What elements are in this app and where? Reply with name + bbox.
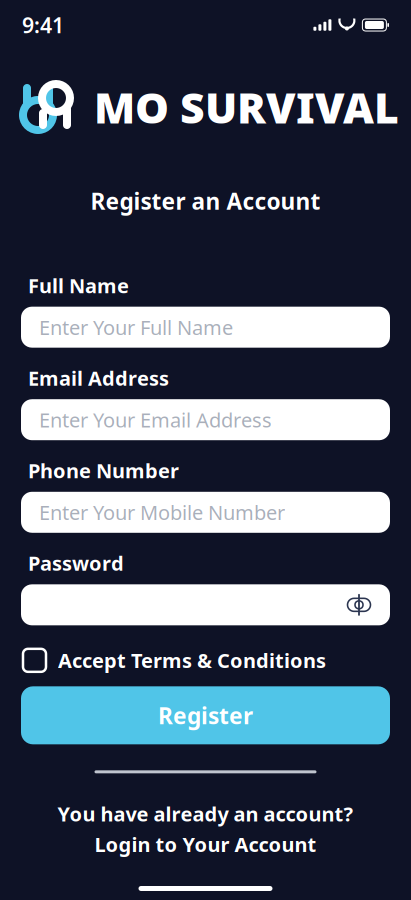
staticText: Accept Terms & Conditions — [58, 647, 326, 674]
staticText: Enter Your Mobile Number — [39, 499, 285, 526]
staticText: Register an Account — [90, 186, 320, 216]
staticText: Enter Your Full Name — [39, 314, 233, 340]
staticText: Email Address — [28, 365, 169, 391]
staticText: Enter Your Email Address — [39, 406, 272, 433]
staticText: 9:41 — [22, 11, 64, 39]
button[interactable]: Accept Terms & Conditions — [0, 643, 411, 677]
staticText: MO SURVIVAL — [94, 79, 399, 135]
button[interactable]: You have already an account? — [0, 800, 411, 857]
button[interactable]: Register — [21, 686, 390, 744]
staticText: Phone Number — [28, 457, 179, 484]
staticText: Login to Your Account — [94, 831, 316, 857]
staticText: You have already an account? — [57, 800, 353, 827]
button[interactable]: Enter Your Email Address — [21, 399, 390, 440]
staticText: Register — [158, 700, 253, 730]
staticText: Password — [28, 550, 124, 576]
button[interactable]: Enter Your Full Name — [21, 307, 390, 348]
button[interactable]: Show password — [21, 584, 390, 625]
button[interactable]: Enter Your Mobile Number — [21, 492, 390, 533]
staticText: Full Name — [28, 272, 129, 299]
